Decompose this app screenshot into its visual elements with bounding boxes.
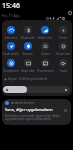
button[interactable]: Signal	[56, 17, 59, 20]
staticText: Fener	[59, 36, 68, 39]
staticText: Android Sistem	[11, 101, 34, 105]
button[interactable]: Wi-Fi	[59, 17, 62, 20]
staticText: Uçak modu	[2, 52, 19, 55]
button[interactable]: Expand	[63, 108, 68, 113]
button[interactable]: Battery	[62, 17, 65, 20]
staticText: Sessiz	[41, 52, 50, 55]
staticText: Ekran kay.	[56, 52, 71, 55]
button[interactable]: Projeksiyon	[36, 59, 54, 72]
button[interactable]: Account	[68, 11, 72, 15]
button[interactable]: Konum	[19, 42, 36, 55]
button[interactable]: Bluetooth	[19, 26, 36, 39]
staticText: Döndürme	[3, 69, 19, 72]
staticText: İnternet	[5, 36, 17, 39]
staticText: Pzt, 17 Ağu	[2, 13, 20, 18]
button[interactable]: Do not disturb	[49, 17, 52, 20]
staticText: Sana, diğer uygulamaların üzerinde	[5, 107, 63, 112]
button[interactable]: Alarm	[46, 17, 49, 20]
staticText: Projeksiyon	[37, 69, 54, 72]
button[interactable]: Ekran kay.	[54, 42, 72, 55]
staticText: Bluetooth	[21, 36, 35, 39]
staticText: Mobil veri	[38, 36, 52, 39]
button[interactable]: Tuşlar	[54, 59, 72, 72]
button[interactable]: Fener	[54, 26, 72, 39]
button[interactable]: Sessiz	[36, 42, 54, 55]
button[interactable]: Kayıt ekle	[19, 59, 36, 72]
button[interactable]: Mobil veri	[36, 26, 54, 39]
staticText: Bugün 13:46'da güncellendi	[8, 77, 48, 81]
button[interactable]: Bluetooth	[52, 17, 55, 20]
staticText: Kayıt ekle	[21, 69, 35, 72]
button[interactable]: İnternet	[2, 26, 19, 39]
button[interactable]: Android Sistem	[2, 99, 71, 125]
button[interactable]: Brightness	[3, 86, 70, 93]
button[interactable]: Uçak modu	[2, 42, 19, 55]
staticText: 15:46	[2, 1, 20, 11]
staticText: Tuşlar	[59, 69, 68, 72]
staticText: Telefonun üzerinde gösterilen diğer uygu…	[5, 113, 63, 121]
button[interactable]: Döndürme	[2, 59, 19, 72]
staticText: Konum	[22, 52, 33, 55]
